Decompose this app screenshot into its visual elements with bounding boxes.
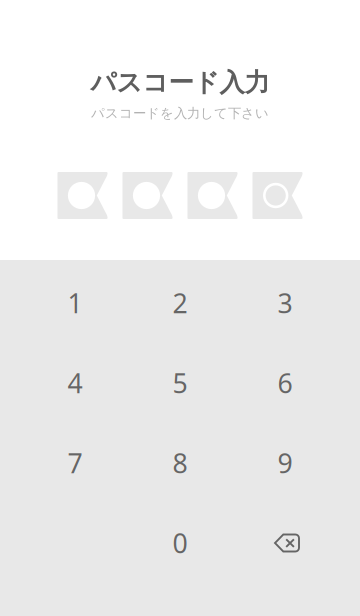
button[interactable]: Delete: [232, 503, 337, 583]
button[interactable]: 9: [232, 423, 337, 503]
staticText: 1: [67, 285, 82, 321]
button[interactable]: 7: [22, 423, 127, 503]
staticText: パスコードを入力して下さい: [91, 105, 269, 121]
staticText: 4: [67, 365, 82, 401]
staticText: 7: [67, 445, 82, 481]
staticText: 9: [277, 445, 292, 481]
staticText: 6: [277, 365, 292, 401]
staticText: 2: [172, 285, 187, 321]
button[interactable]: 1: [22, 263, 127, 343]
staticText: 3: [277, 285, 292, 321]
staticText: 5: [172, 365, 187, 401]
button[interactable]: 0: [127, 503, 232, 583]
button[interactable]: 3: [232, 263, 337, 343]
staticText: 0: [172, 525, 187, 561]
staticText: 8: [172, 445, 187, 481]
button[interactable]: 2: [127, 263, 232, 343]
button[interactable]: 6: [232, 343, 337, 423]
button[interactable]: 4: [22, 343, 127, 423]
button[interactable]: 5: [127, 343, 232, 423]
staticText: パスコード入力: [90, 67, 269, 98]
button[interactable]: 8: [127, 423, 232, 503]
